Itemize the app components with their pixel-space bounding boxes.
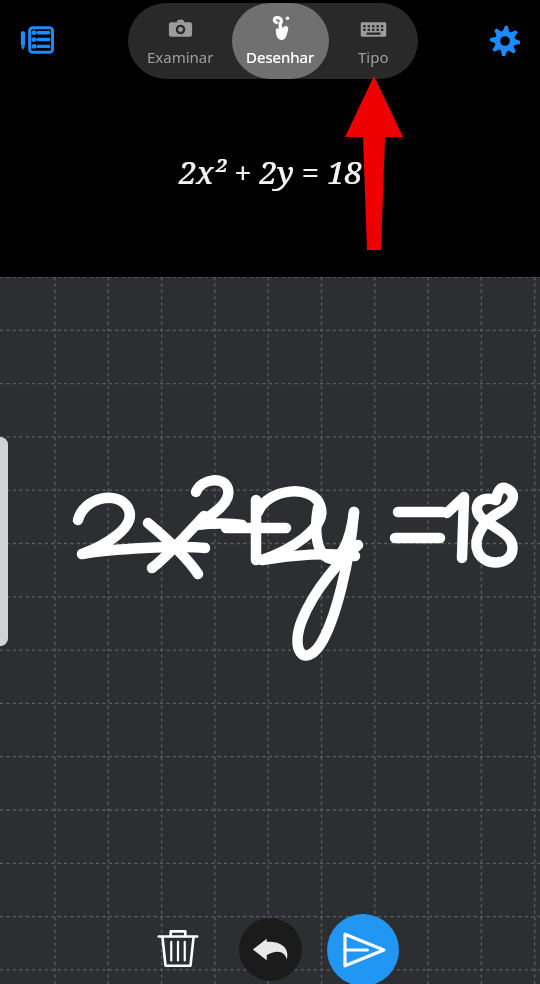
button[interactable]: Settings bbox=[482, 18, 528, 64]
button[interactable]: Examinar bbox=[128, 3, 232, 79]
staticText: Desenhar bbox=[246, 47, 315, 67]
button[interactable]: Notes list bbox=[16, 18, 60, 62]
button[interactable]: Desenhar bbox=[232, 3, 329, 79]
staticText: 2x² + 2y = 18 bbox=[179, 151, 362, 193]
button[interactable]: Undo bbox=[239, 918, 302, 981]
staticText: Examinar bbox=[147, 47, 214, 67]
button[interactable]: Delete bbox=[152, 922, 204, 974]
button[interactable]: Tipo bbox=[329, 3, 418, 79]
staticText: Tipo bbox=[358, 47, 389, 67]
button[interactable]: Send bbox=[327, 914, 399, 984]
